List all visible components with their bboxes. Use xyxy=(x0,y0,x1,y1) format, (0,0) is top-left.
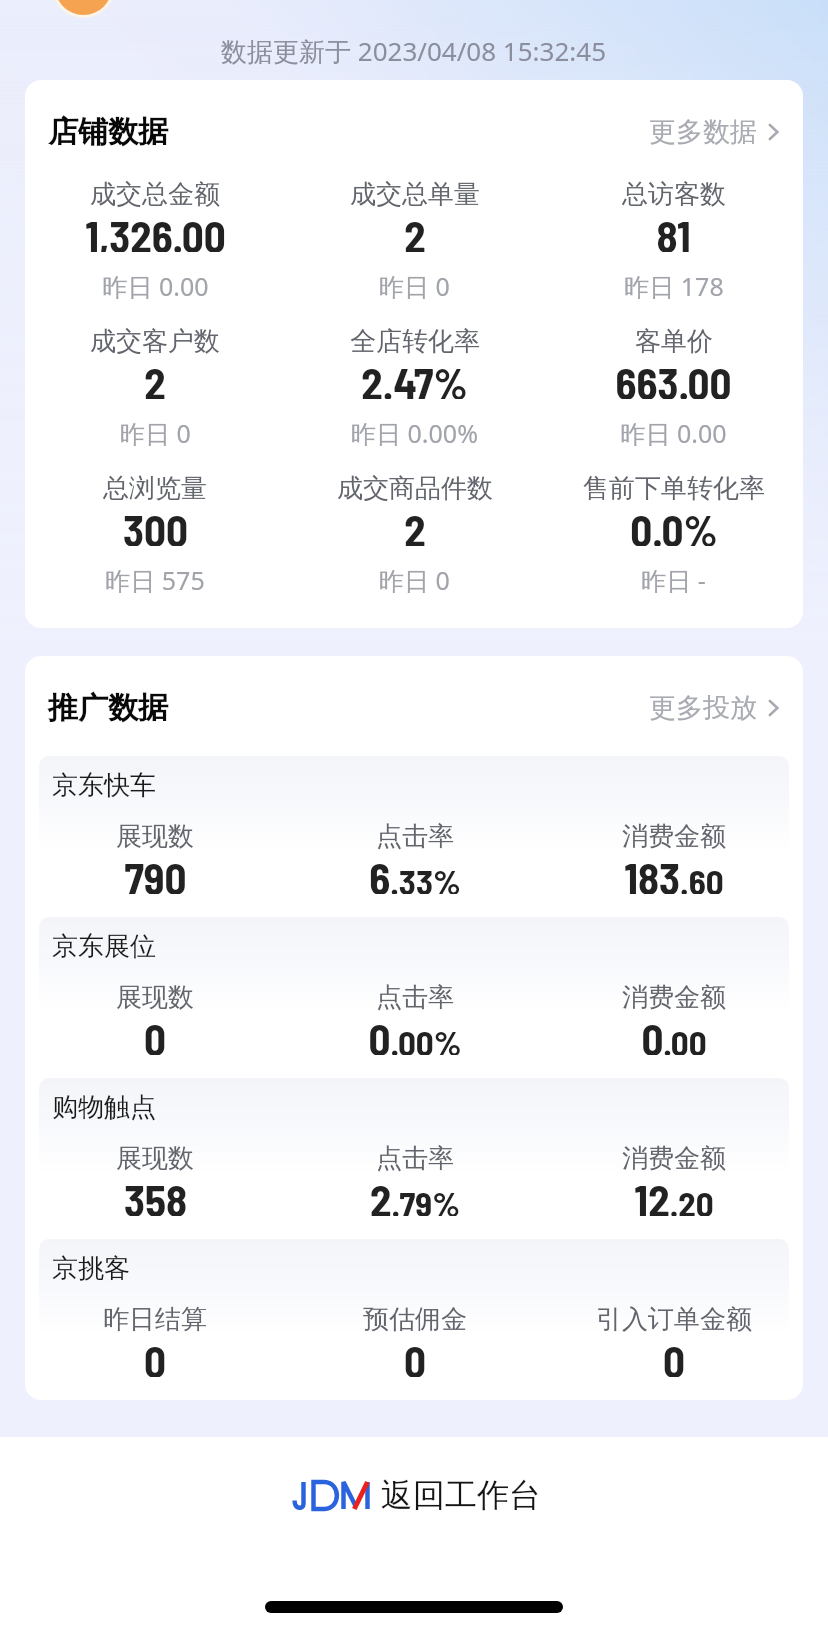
staticText: 2.47% xyxy=(361,357,468,399)
staticText: 店铺数据 xyxy=(48,113,168,151)
staticText: 客单价 xyxy=(635,325,713,357)
button[interactable]: 全店转化率 xyxy=(285,325,544,446)
staticText: 6.33% xyxy=(369,852,461,894)
staticText: 昨日 0 xyxy=(120,416,191,446)
staticText: 0 xyxy=(144,1013,166,1055)
staticText: 790 xyxy=(124,852,187,894)
button[interactable]: 成交商品件数 xyxy=(285,472,544,593)
staticText: 2 xyxy=(404,504,426,546)
button[interactable]: Shop avatar xyxy=(52,0,115,18)
staticText: 昨日 - xyxy=(641,563,706,593)
staticText: 0 xyxy=(663,1335,685,1377)
staticText: 358 xyxy=(124,1174,187,1216)
staticText: 2.79% xyxy=(370,1174,460,1216)
staticText: 昨日 0 xyxy=(379,269,450,299)
staticText: 2 xyxy=(404,210,426,252)
staticText: 81 xyxy=(656,210,691,252)
staticText: 更多投放 xyxy=(649,691,757,725)
staticText: 总访客数 xyxy=(622,178,726,210)
staticText: 消费金额 xyxy=(622,1142,726,1174)
button[interactable]: 成交客户数 xyxy=(25,325,285,446)
staticText: 京挑客 xyxy=(52,1252,130,1285)
button[interactable]: 总浏览量 xyxy=(25,472,285,593)
staticText: 昨日 0.00 xyxy=(102,269,209,299)
staticText: 昨日 0.00% xyxy=(351,416,478,446)
button[interactable]: 更多投放 xyxy=(635,683,803,733)
staticText: 昨日 0.00 xyxy=(620,416,727,446)
staticText: 总浏览量 xyxy=(103,472,207,504)
button[interactable]: 总访客数 xyxy=(544,178,803,299)
staticText: 2 xyxy=(144,357,166,399)
staticText: 成交客户数 xyxy=(90,325,220,357)
button[interactable]: 更多数据 xyxy=(635,107,803,157)
button[interactable]: 京挑客 xyxy=(25,1239,803,1400)
staticText: 1,326.00 xyxy=(85,210,226,252)
staticText: 点击率 xyxy=(376,820,454,852)
staticText: 昨日 0 xyxy=(379,563,450,593)
staticText: 0 xyxy=(404,1335,426,1377)
staticText: 预估佣金 xyxy=(363,1303,467,1335)
button[interactable]: 成交总金额 xyxy=(25,178,285,299)
staticText: 成交总金额 xyxy=(90,178,220,210)
staticText: 300 xyxy=(123,504,188,546)
staticText: 0.0% xyxy=(630,504,718,546)
staticText: 返回工作台 xyxy=(381,1475,541,1515)
staticText: 昨日 575 xyxy=(105,563,205,593)
staticText: 0.00% xyxy=(368,1013,462,1055)
staticText: 京东展位 xyxy=(52,930,156,963)
staticText: 引入订单金额 xyxy=(596,1303,752,1335)
staticText: 成交商品件数 xyxy=(337,472,493,504)
staticText: 点击率 xyxy=(376,981,454,1013)
staticText: 展现数 xyxy=(116,981,194,1013)
staticText: 数据更新于 2023/04/08 15:32:45 xyxy=(221,33,607,69)
staticText: 183.60 xyxy=(624,852,724,894)
staticText: 展现数 xyxy=(116,1142,194,1174)
staticText: 购物触点 xyxy=(52,1091,156,1124)
staticText: 12.20 xyxy=(634,1174,714,1216)
button[interactable]: 京东快车 xyxy=(25,756,803,917)
button[interactable]: 购物触点 xyxy=(25,1078,803,1239)
staticText: 0 xyxy=(144,1335,166,1377)
button[interactable]: 成交总单量 xyxy=(285,178,544,299)
staticText: 展现数 xyxy=(116,820,194,852)
staticText: 售前下单转化率 xyxy=(583,472,765,504)
staticText: 消费金额 xyxy=(622,820,726,852)
staticText: 京东快车 xyxy=(52,769,156,802)
staticText: 推广数据 xyxy=(48,689,168,727)
button[interactable]: 京东展位 xyxy=(25,917,803,1078)
button[interactable]: 客单价 xyxy=(544,325,803,446)
staticText: 663.00 xyxy=(615,357,732,399)
staticText: 点击率 xyxy=(376,1142,454,1174)
button[interactable]: 返回工作台 xyxy=(282,1471,547,1519)
staticText: 0.00 xyxy=(641,1013,707,1055)
staticText: 昨日 178 xyxy=(624,269,724,299)
staticText: 全店转化率 xyxy=(350,325,480,357)
staticText: 昨日结算 xyxy=(103,1303,207,1335)
staticText: 消费金额 xyxy=(622,981,726,1013)
staticText: 更多数据 xyxy=(649,115,757,149)
staticText: 成交总单量 xyxy=(350,178,480,210)
button[interactable]: 售前下单转化率 xyxy=(544,472,803,593)
